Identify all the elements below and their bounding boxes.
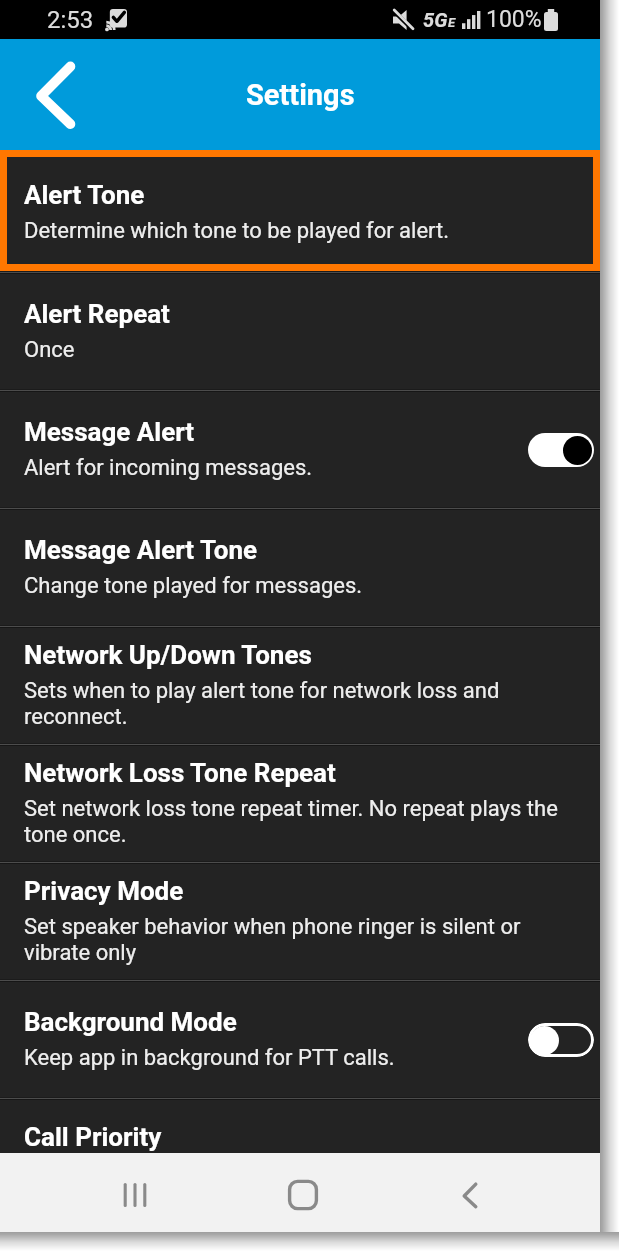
staticText: Once xyxy=(24,337,75,363)
staticText: Alert Tone xyxy=(24,180,145,210)
staticText: Set speaker behavior when phone ringer i… xyxy=(24,914,569,966)
button[interactable]: Network Loss Tone Repeat xyxy=(0,746,600,861)
staticText: Message Alert Tone xyxy=(24,535,258,565)
staticText: Alert Repeat xyxy=(24,299,170,329)
button[interactable]: Message Alert Tone xyxy=(0,510,600,625)
staticText: Call Priority xyxy=(24,1122,162,1152)
staticText: Network Loss Tone Repeat xyxy=(24,758,336,788)
staticText: Background Mode xyxy=(24,1007,237,1037)
button[interactable]: Toggle off xyxy=(528,1023,594,1057)
staticText: Keep app in background for PTT calls. xyxy=(24,1045,395,1071)
button[interactable]: Network Up/Down Tones xyxy=(0,628,600,743)
staticText: 100% xyxy=(486,6,542,33)
button[interactable]: Message Alert xyxy=(0,392,600,507)
button[interactable]: Call Priority xyxy=(0,1100,600,1153)
button[interactable]: Background Mode xyxy=(0,982,600,1097)
staticText: 5G xyxy=(423,8,448,31)
button[interactable]: Privacy Mode xyxy=(0,864,600,979)
staticText: Determine which tone to be played for al… xyxy=(24,218,450,244)
button[interactable]: Home xyxy=(275,1167,331,1223)
button[interactable]: Back xyxy=(442,1168,498,1224)
staticText: Network Up/Down Tones xyxy=(24,640,312,670)
button[interactable]: Back xyxy=(24,63,88,127)
staticText: Set network loss tone repeat timer. No r… xyxy=(24,796,569,848)
staticText: Alert for incoming messages. xyxy=(24,455,313,481)
button[interactable]: Alert Repeat xyxy=(0,274,600,389)
button[interactable]: Toggle on xyxy=(528,433,594,467)
staticText: 2:53 xyxy=(47,6,94,34)
button[interactable]: Alert Tone xyxy=(0,150,600,271)
staticText: Message Alert xyxy=(24,417,195,447)
staticText: Privacy Mode xyxy=(24,876,184,906)
staticText: E xyxy=(448,15,456,30)
button[interactable]: Recent apps xyxy=(107,1167,163,1223)
staticText: Settings xyxy=(246,78,355,112)
staticText: Sets when to play alert tone for network… xyxy=(24,678,569,730)
staticText: Change tone played for messages. xyxy=(24,573,363,599)
